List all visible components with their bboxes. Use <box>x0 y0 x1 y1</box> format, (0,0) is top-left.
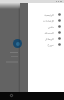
staticText: خروج <box>47 43 54 46</box>
button[interactable]: Home <box>10 94 13 97</box>
button[interactable]: المفضلة <box>28 29 64 35</box>
button[interactable]: ملفي <box>28 23 64 29</box>
staticText: الرئيسية <box>44 13 54 16</box>
staticText: المفضلة <box>44 31 54 34</box>
staticText: الرسائل <box>44 37 54 40</box>
button[interactable]: خروج <box>28 41 64 47</box>
button[interactable]: الإعدادات <box>28 17 64 23</box>
button[interactable]: الرئيسية <box>28 11 64 17</box>
staticText: ملفي <box>47 25 54 28</box>
button[interactable]: الرسائل <box>28 35 64 41</box>
staticText: الإعدادات <box>43 19 54 22</box>
